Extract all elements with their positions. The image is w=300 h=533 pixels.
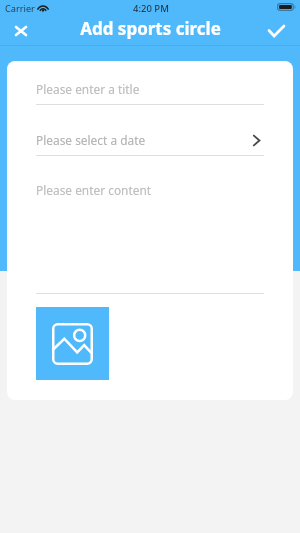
- button[interactable]: Please select a date: [7, 105, 293, 156]
- staticText: Please select a date: [36, 132, 146, 148]
- staticText: Please enter a title: [36, 81, 140, 97]
- button[interactable]: Close: [0, 17, 42, 45]
- staticText: Add sports circle: [80, 17, 221, 40]
- button[interactable]: Please enter a title: [7, 61, 293, 105]
- staticText: Please enter content: [36, 182, 152, 198]
- button[interactable]: Confirm: [254, 17, 298, 45]
- staticText: 4:20 PM: [133, 2, 169, 15]
- staticText: Carrier: [5, 2, 35, 15]
- button[interactable]: Add image: [36, 307, 109, 380]
- button[interactable]: Please enter content: [7, 156, 293, 294]
